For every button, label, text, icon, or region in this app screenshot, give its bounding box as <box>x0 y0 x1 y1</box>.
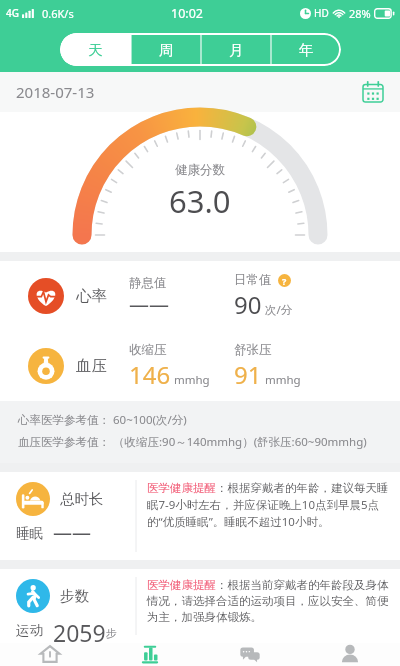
staticText: 天 <box>88 41 103 59</box>
staticText: mmhg <box>265 372 301 388</box>
other: Pick date <box>362 81 384 103</box>
button[interactable]: 消息 <box>200 643 300 666</box>
staticText: 28% <box>349 6 371 21</box>
staticText: 90 <box>234 288 262 321</box>
staticText: 63.0 <box>169 180 231 222</box>
staticText: 146 <box>129 358 171 391</box>
staticText: 舒张压 <box>234 342 272 358</box>
staticText: 10:02 <box>171 5 203 22</box>
button[interactable]: 步数 <box>0 569 400 643</box>
button[interactable]: 月 <box>201 33 271 66</box>
staticText: 运动 <box>16 622 43 639</box>
staticText: 健康分数 <box>175 162 225 178</box>
button[interactable]: 心率 <box>0 261 400 331</box>
staticText: 周 <box>159 41 174 59</box>
staticText: 睡眠 <box>16 525 43 542</box>
staticText: 血压 <box>76 356 107 376</box>
staticText: 年 <box>299 41 314 59</box>
staticText: 心率医学参考值： 60~100(次/分) <box>18 412 187 428</box>
button[interactable]: 首页 <box>0 643 100 666</box>
button[interactable]: 年 <box>271 33 341 66</box>
button[interactable]: 天 <box>60 33 131 66</box>
button[interactable]: Help <box>278 274 291 287</box>
staticText: mmhg <box>174 372 210 388</box>
staticText: 静息值 <box>129 275 167 291</box>
staticText: —— <box>53 520 92 546</box>
staticText: 日常值 <box>234 272 272 288</box>
staticText: 0.6K/s <box>42 6 74 21</box>
button[interactable]: 2018-07-13 <box>0 72 400 112</box>
staticText: 医学健康提醒：根据当前穿戴者的年龄段及身体情况，请选择合适的运动项目，应以安全、… <box>147 578 391 625</box>
staticText: —— <box>129 291 169 318</box>
button[interactable]: 血压 <box>0 331 400 401</box>
button[interactable]: 总时长 <box>0 472 400 560</box>
staticText: 心率 <box>76 286 107 306</box>
staticText: HD <box>314 6 329 20</box>
staticText: 步 <box>106 626 117 640</box>
staticText: 次/分 <box>265 302 293 318</box>
staticText: 2059 <box>53 617 106 643</box>
staticText: 4G <box>6 6 19 20</box>
button[interactable]: 我的 <box>300 643 400 666</box>
staticText: 步数 <box>60 587 89 605</box>
staticText: 91 <box>234 358 262 391</box>
staticText: ? <box>282 275 287 287</box>
staticText: 血压医学参考值： （收缩压:90～140mmhg）(舒张压:60~90mmhg) <box>18 434 367 450</box>
staticText: 收缩压 <box>129 342 167 358</box>
button[interactable]: 报告 <box>100 643 200 666</box>
staticText: 2018-07-13 <box>16 82 95 102</box>
staticText: 月 <box>229 41 244 59</box>
staticText: 总时长 <box>60 490 104 508</box>
button[interactable]: 周 <box>131 33 201 66</box>
staticText: 医学健康提醒：根据穿戴者的年龄，建议每天睡眠7-9小时左右，并应保证晚上10点到… <box>147 481 391 529</box>
